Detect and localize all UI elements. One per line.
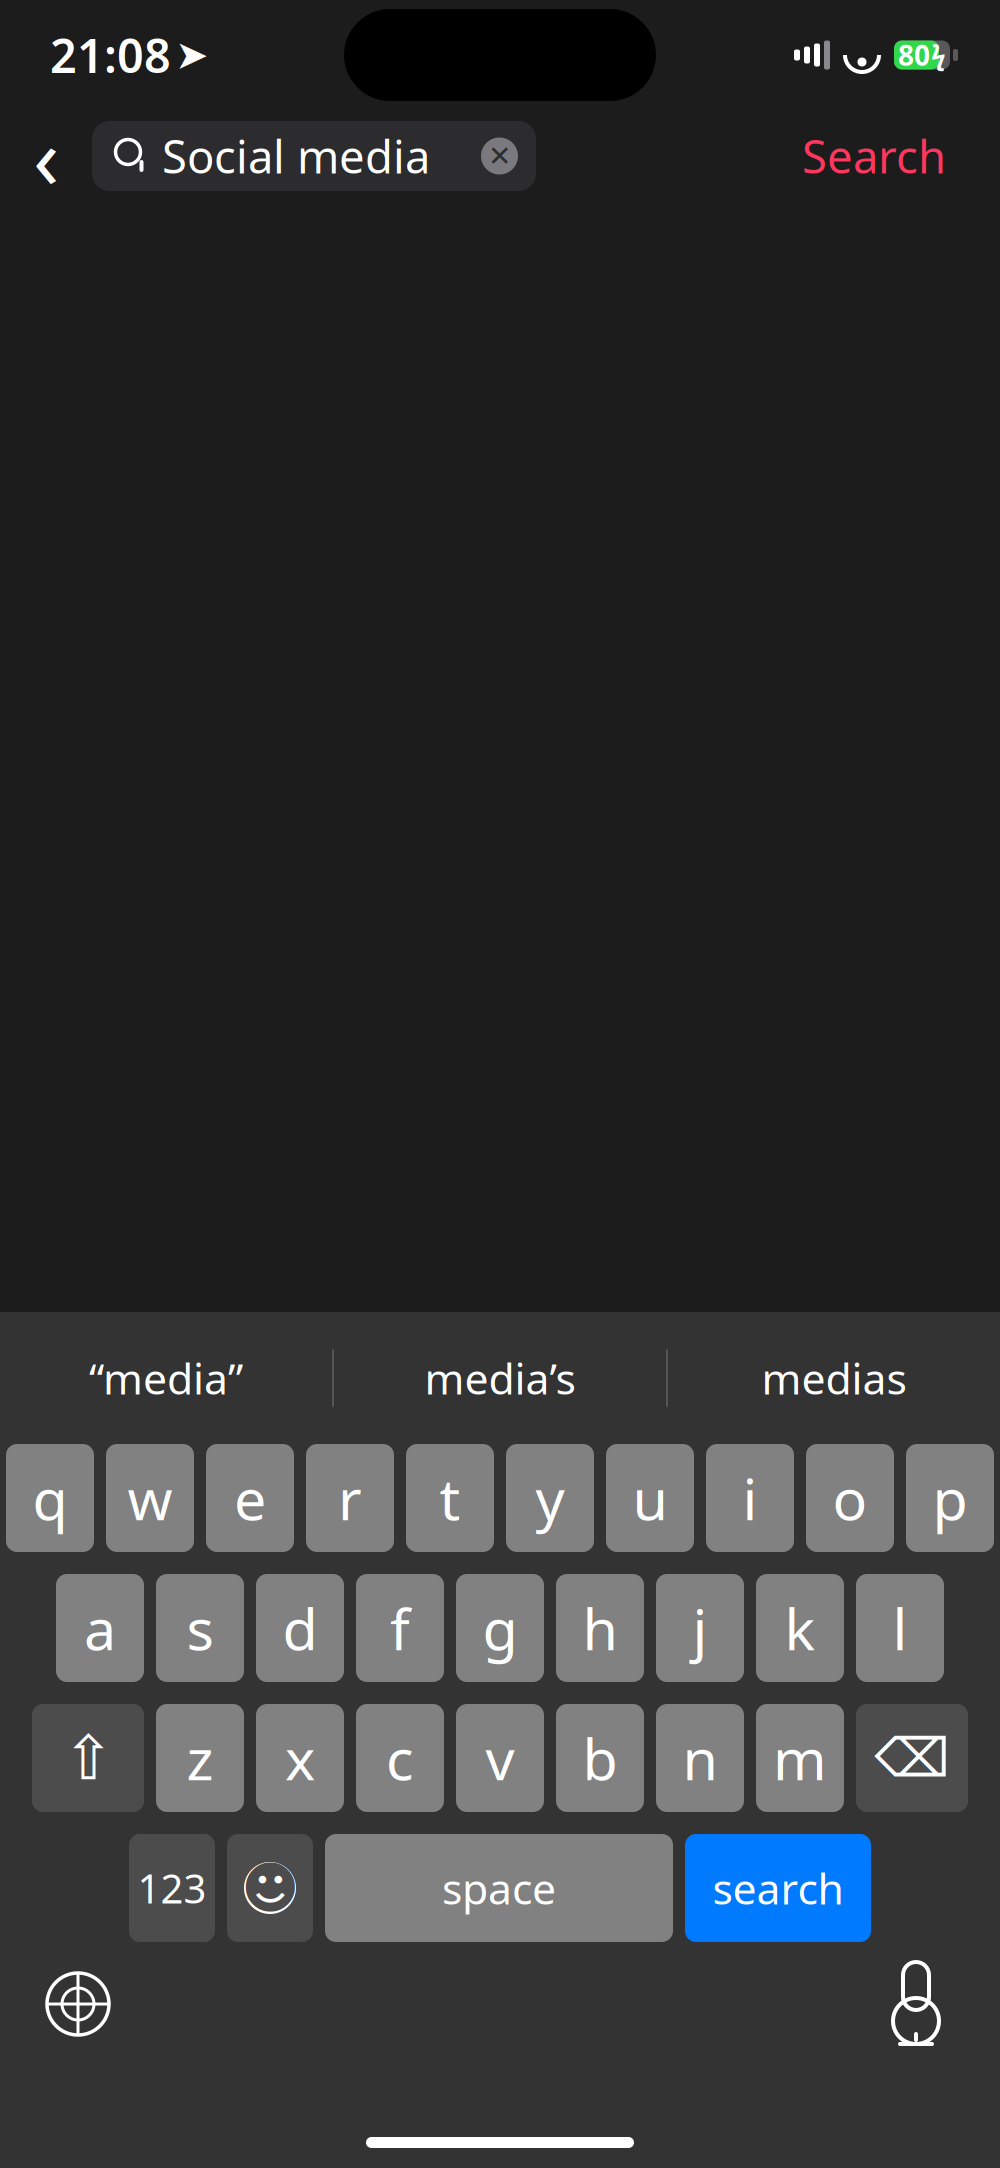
staticText: h (582, 1590, 617, 1666)
button[interactable]: Change keyboard (32, 1958, 124, 2050)
button[interactable]: e (206, 1444, 294, 1552)
button[interactable]: g (456, 1574, 544, 1682)
staticText: ϟ (931, 37, 946, 73)
staticText: z (186, 1720, 213, 1796)
button[interactable]: ⌫ (856, 1704, 968, 1812)
button[interactable]: search (685, 1834, 871, 1942)
button[interactable]: media’s (334, 1312, 666, 1444)
staticText: r (338, 1460, 362, 1536)
staticText: space (442, 1860, 556, 1916)
button[interactable]: w (106, 1444, 194, 1552)
staticText: m (773, 1720, 827, 1796)
button[interactable]: ⇧ (32, 1704, 144, 1812)
staticText: medias (761, 1350, 906, 1406)
staticText: g (482, 1590, 517, 1666)
button[interactable]: Social media (92, 121, 536, 191)
button[interactable]: medias (668, 1312, 1000, 1444)
staticText: d (282, 1590, 317, 1666)
staticText: x (285, 1720, 315, 1796)
staticText: j (692, 1590, 707, 1666)
button[interactable]: d (256, 1574, 344, 1682)
staticText: search (712, 1860, 843, 1916)
button[interactable]: x (256, 1704, 344, 1812)
staticText: “media” (89, 1350, 243, 1406)
staticText: y (535, 1460, 564, 1536)
button[interactable]: f (356, 1574, 444, 1682)
button[interactable]: u (606, 1444, 694, 1552)
staticText: 123 (137, 1861, 206, 1914)
button[interactable]: o (806, 1444, 894, 1552)
staticText: t (439, 1460, 460, 1536)
staticText: w (127, 1460, 172, 1536)
staticText: 21:08 (50, 24, 171, 86)
button[interactable]: p (906, 1444, 994, 1552)
button[interactable]: Dictation (870, 1958, 962, 2050)
button[interactable]: r (306, 1444, 394, 1552)
staticText: f (390, 1590, 410, 1666)
button[interactable]: Emoji (227, 1834, 313, 1942)
staticText: ☻ (241, 1856, 299, 1920)
staticText: ‹ (33, 99, 59, 213)
button[interactable]: t (406, 1444, 494, 1552)
button[interactable]: m (756, 1704, 844, 1812)
button[interactable]: a (56, 1574, 144, 1682)
button[interactable]: c (356, 1704, 444, 1812)
button[interactable]: Back (0, 118, 92, 194)
staticText: q (32, 1460, 67, 1536)
button[interactable]: q (6, 1444, 94, 1552)
button[interactable]: b (556, 1704, 644, 1812)
staticText: ⌫ (874, 1728, 949, 1788)
staticText: Search (802, 126, 946, 186)
button[interactable]: i (706, 1444, 794, 1552)
staticText: 80 (898, 36, 930, 74)
staticText: e (234, 1460, 266, 1536)
staticText: Social media (162, 126, 430, 186)
button[interactable]: v (456, 1704, 544, 1812)
staticText: i (742, 1460, 757, 1536)
staticText: p (932, 1460, 967, 1536)
button[interactable]: n (656, 1704, 744, 1812)
staticText: ⇧ (62, 1723, 113, 1793)
staticText: ✕ (488, 140, 511, 172)
button[interactable]: y (506, 1444, 594, 1552)
button[interactable]: j (656, 1574, 744, 1682)
staticText: o (832, 1460, 867, 1536)
button[interactable]: “media” (0, 1312, 332, 1444)
button[interactable]: 123 (129, 1834, 215, 1942)
staticText: s (186, 1590, 213, 1666)
staticText: v (485, 1720, 514, 1796)
staticText: media’s (424, 1350, 575, 1406)
staticText: a (84, 1590, 116, 1666)
staticText: ➤ (175, 32, 209, 78)
staticText: b (582, 1720, 617, 1796)
staticText: u (632, 1460, 667, 1536)
button[interactable]: s (156, 1574, 244, 1682)
staticText: l (892, 1590, 907, 1666)
button[interactable]: k (756, 1574, 844, 1682)
staticText: k (784, 1590, 815, 1666)
button[interactable]: h (556, 1574, 644, 1682)
button[interactable]: z (156, 1704, 244, 1812)
button[interactable]: space (325, 1834, 673, 1942)
button[interactable]: Search (790, 118, 958, 194)
button[interactable]: l (856, 1574, 944, 1682)
staticText: c (386, 1720, 414, 1796)
staticText: n (682, 1720, 717, 1796)
